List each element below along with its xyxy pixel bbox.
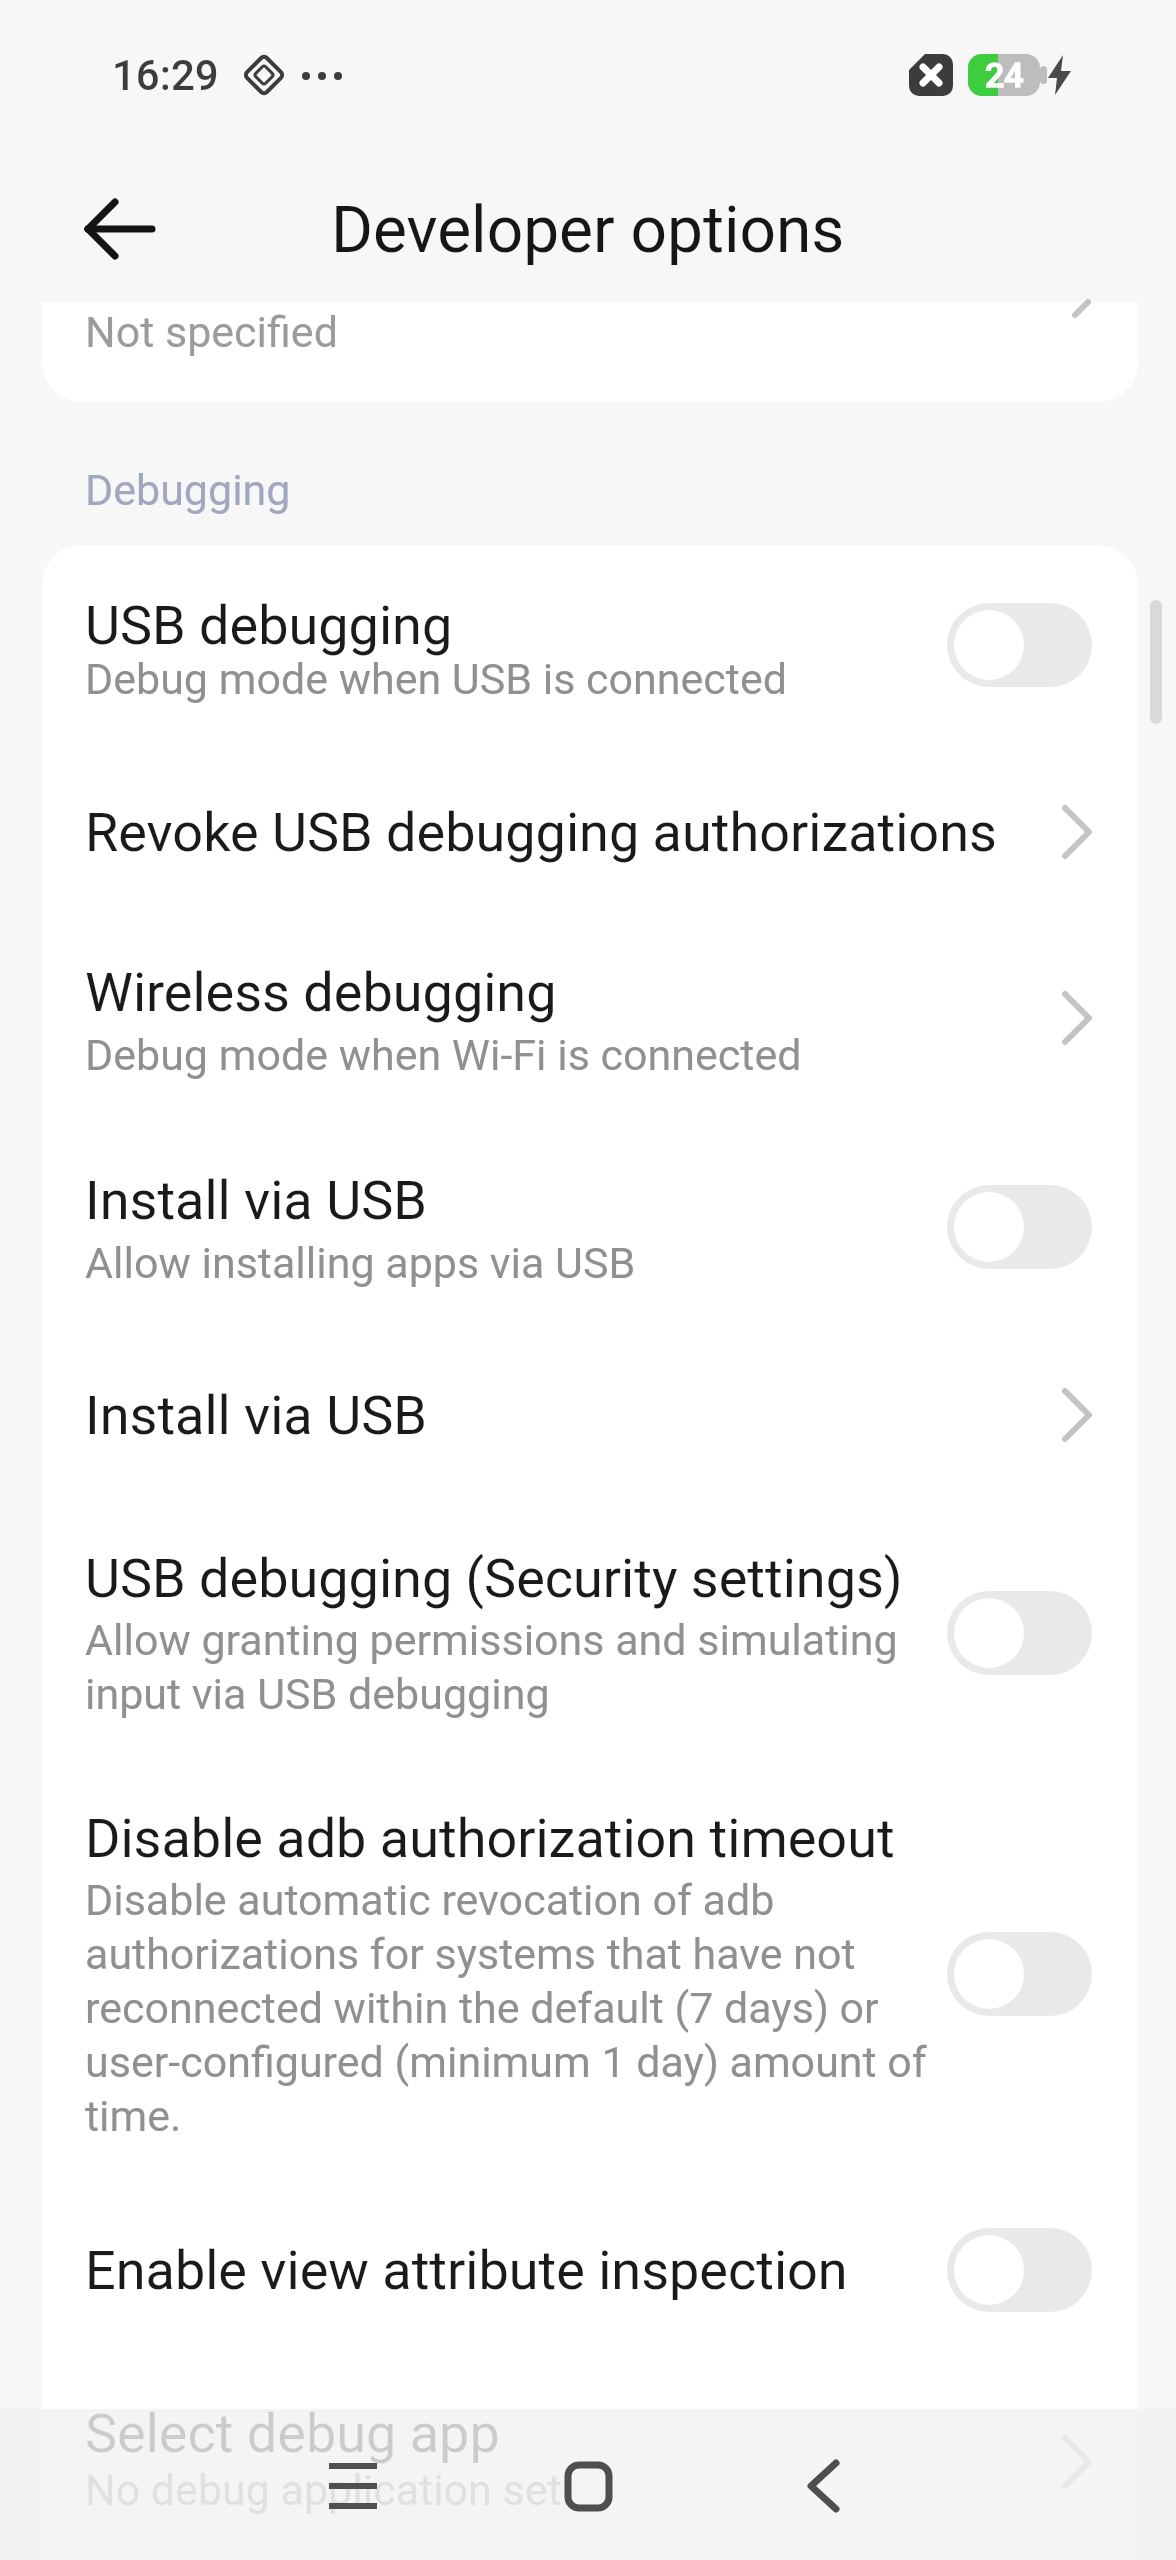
staticText: Developer options: [331, 193, 845, 268]
button[interactable]: [42, 1765, 1138, 2190]
button[interactable]: [42, 302, 1138, 402]
staticText: 24: [985, 55, 1024, 95]
button[interactable]: [42, 1340, 1138, 1490]
staticText: Install via USB: [85, 1384, 427, 1447]
staticText: USB debugging: [85, 594, 453, 657]
button[interactable]: [42, 755, 1138, 910]
staticText: Debug mode when USB is connected: [85, 654, 787, 704]
staticText: 16:29: [112, 51, 219, 100]
button[interactable]: [947, 2228, 1092, 2312]
button[interactable]: [293, 2426, 413, 2546]
staticText: Disable adb authorization timeout: [85, 1807, 895, 1870]
button[interactable]: [42, 2190, 1138, 2355]
button[interactable]: [763, 2426, 883, 2546]
button[interactable]: [947, 1185, 1092, 1269]
button[interactable]: [42, 545, 1138, 755]
staticText: Disable automatic revocation of adb: [85, 1875, 775, 1925]
staticText: user-configured (minimum 1 day) amount o…: [85, 2037, 927, 2087]
button[interactable]: [42, 1130, 1138, 1340]
button[interactable]: [42, 910, 1138, 1130]
button[interactable]: [42, 2355, 1138, 2560]
staticText: Select debug app: [85, 2402, 500, 2465]
button[interactable]: [947, 1932, 1092, 2016]
staticText: Revoke USB debugging authorizations: [85, 801, 997, 864]
button[interactable]: [42, 1490, 1138, 1765]
button[interactable]: [60, 180, 180, 280]
button[interactable]: [528, 2426, 648, 2546]
staticText: USB debugging (Security settings): [85, 1547, 903, 1610]
staticText: Debug mode when Wi-Fi is connected: [85, 1030, 802, 1080]
staticText: Install via USB: [85, 1169, 427, 1232]
staticText: Allow installing apps via USB: [85, 1238, 636, 1288]
staticText: time.: [85, 2091, 182, 2141]
staticText: reconnected within the default (7 days) …: [85, 1983, 879, 2033]
button[interactable]: [947, 1591, 1092, 1675]
staticText: input via USB debugging: [85, 1669, 550, 1719]
button[interactable]: [947, 603, 1092, 687]
staticText: Wireless debugging: [85, 961, 557, 1024]
staticText: No debug application set: [85, 2465, 562, 2515]
staticText: Not specified: [85, 307, 338, 357]
staticText: Allow granting permissions and simulatin…: [85, 1615, 898, 1665]
staticText: Debugging: [85, 465, 291, 515]
staticText: authorizations for systems that have not: [85, 1929, 856, 1979]
staticText: Enable view attribute inspection: [85, 2239, 848, 2302]
